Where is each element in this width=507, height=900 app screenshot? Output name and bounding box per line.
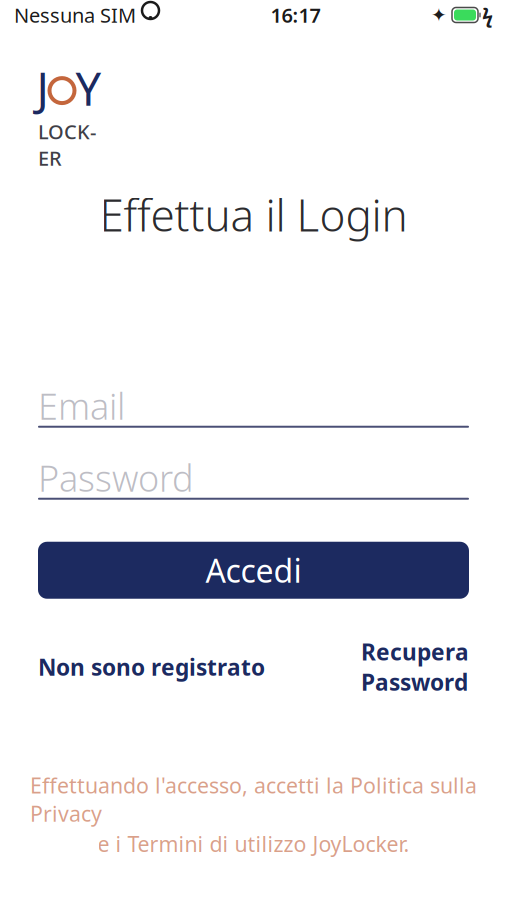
staticText: Effettua il Login [99, 185, 407, 244]
button[interactable]: Non sono registrato [38, 652, 265, 682]
staticText: Effettuando l'accesso, accetti la Politi… [30, 771, 477, 828]
staticText: Nessuna SIM [14, 2, 136, 28]
button[interactable]: Accedi [38, 542, 469, 599]
staticText: e i Termini di utilizzo JoyLocker. [97, 830, 409, 858]
staticText [136, 2, 141, 28]
staticText: Non sono registrato [38, 652, 265, 682]
staticText: ϟ [482, 2, 493, 28]
button[interactable]: Recupera Password [361, 637, 469, 697]
staticText: Y [75, 58, 101, 118]
staticText: LOCKER [38, 118, 96, 171]
staticText: Password [38, 454, 194, 502]
staticText: ✦ [431, 4, 447, 26]
staticText: 16:17 [270, 2, 320, 28]
staticText: J [36, 58, 48, 118]
staticText: Accedi [205, 549, 301, 591]
staticText: Email [38, 382, 125, 430]
staticText: Recupera Password [361, 637, 469, 697]
